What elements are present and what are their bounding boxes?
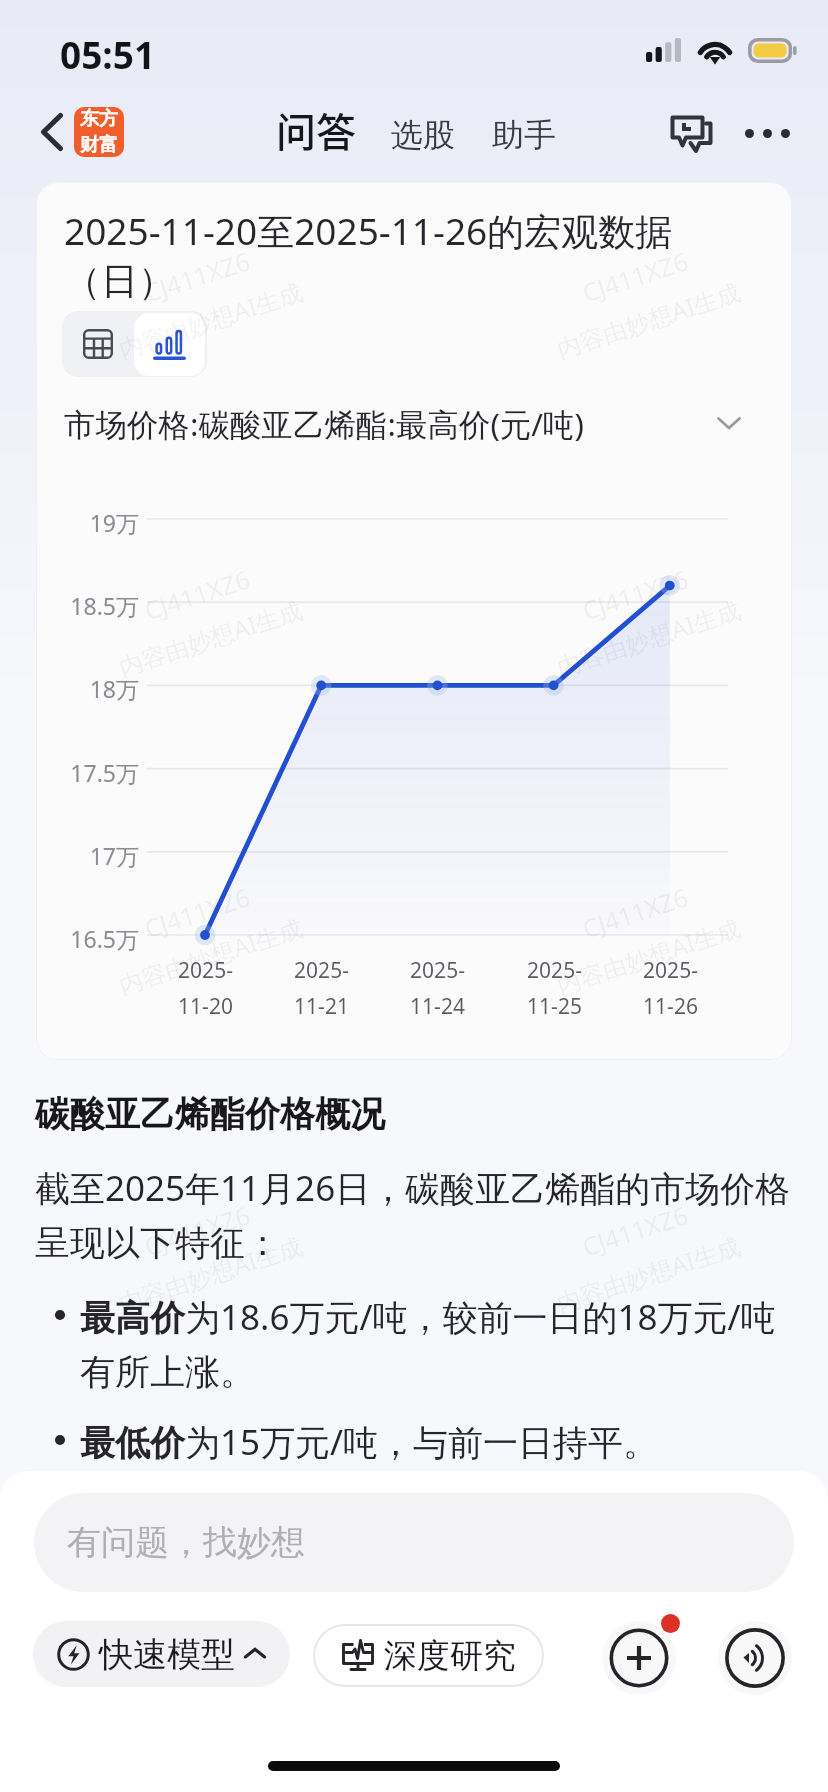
- staticText: 17.5万: [70, 757, 139, 788]
- button[interactable]: Chart view: [134, 313, 205, 376]
- staticText: CJ411XZ6: [140, 1515, 254, 1581]
- staticText: CJ411XZ6: [140, 879, 254, 945]
- staticText: 19万: [89, 507, 139, 538]
- staticText: 18万: [89, 673, 139, 704]
- staticText: CJ411XZ6: [578, 243, 692, 309]
- staticText: 内容由妙想AI生成: [114, 592, 307, 683]
- button[interactable]: Chat history: [660, 102, 722, 164]
- staticText: 内容由妙想AI生成: [114, 1228, 307, 1319]
- staticText: 16.5万: [70, 923, 139, 954]
- staticText: CJ411XZ6: [140, 561, 254, 627]
- staticText: 最低价为15万元/吨，与前一日持平。: [80, 1418, 659, 1466]
- staticText: 内容由妙想AI生成: [552, 910, 745, 1001]
- staticText: 2025- 11-20: [178, 956, 233, 1020]
- staticText: 内容由妙想AI生成: [552, 592, 745, 683]
- button[interactable]: 市场价格:碳酸亚乙烯酯:最高价(元/吨): [64, 397, 741, 449]
- staticText: 内容由妙想AI生成: [552, 1228, 745, 1319]
- button[interactable]: 有问题，找妙想: [34, 1493, 794, 1592]
- staticText: 东方: [80, 107, 118, 131]
- staticText: 2025- 11-24: [410, 956, 465, 1020]
- staticText: 内容由妙想AI生成: [552, 274, 745, 365]
- button[interactable]: 助手: [488, 115, 560, 155]
- staticText: 最高价为18.6万元/吨，较前一日的18万元/吨有所上涨。: [80, 1293, 792, 1395]
- staticText: 市场价格:碳酸亚乙烯酯:最高价(元/吨): [64, 402, 585, 445]
- staticText: 助手: [492, 115, 556, 155]
- staticText: 碳酸亚乙烯酯价格概况: [35, 1092, 385, 1136]
- staticText: 17万: [89, 840, 139, 871]
- button[interactable]: Add attachment: [602, 1621, 676, 1695]
- staticText: 选股: [391, 115, 455, 155]
- button[interactable]: Back: [26, 106, 78, 158]
- staticText: CJ411XZ6: [578, 561, 692, 627]
- staticText: CJ411XZ6: [578, 1197, 692, 1263]
- button[interactable]: More options: [736, 102, 798, 164]
- staticText: 2025-11-20至2025-11-26的宏观数据（日）: [64, 205, 764, 305]
- staticText: 2025- 11-21: [294, 956, 349, 1020]
- button[interactable]: 东方财富: [74, 107, 124, 157]
- staticText: 2025- 11-25: [527, 956, 582, 1020]
- button[interactable]: 深度研究: [313, 1624, 544, 1687]
- staticText: CJ411XZ6: [140, 243, 254, 309]
- button[interactable]: 问答: [272, 101, 360, 159]
- staticText: 深度研究: [384, 1635, 516, 1677]
- staticText: 财富: [80, 133, 118, 157]
- staticText: 内容由妙想AI生成: [114, 1546, 307, 1637]
- staticText: 截至2025年11月26日，碳酸亚乙烯酯的市场价格呈现以下特征：: [35, 1164, 797, 1266]
- button[interactable]: Table view: [62, 311, 133, 377]
- button[interactable]: 快速模型: [33, 1621, 290, 1687]
- staticText: CJ411XZ6: [578, 879, 692, 945]
- staticText: 2025- 11-26: [643, 956, 698, 1020]
- staticText: 内容由妙想AI生成: [114, 910, 307, 1001]
- staticText: 有问题，找妙想: [67, 1521, 305, 1564]
- button[interactable]: Voice input: [718, 1621, 792, 1695]
- button[interactable]: 选股: [387, 115, 459, 155]
- staticText: 内容由妙想AI生成: [552, 1546, 745, 1637]
- staticText: 18.5万: [70, 590, 139, 621]
- staticText: 快速模型: [99, 1633, 235, 1676]
- staticText: 内容由妙想AI生成: [114, 274, 307, 365]
- staticText: 05:51: [60, 29, 156, 79]
- staticText: 问答: [276, 101, 356, 159]
- staticText: CJ411XZ6: [140, 1197, 254, 1263]
